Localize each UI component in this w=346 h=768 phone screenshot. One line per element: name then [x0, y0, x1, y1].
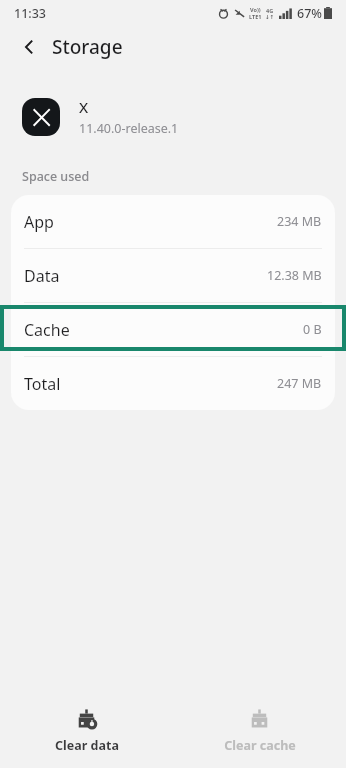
staticText: LTE1 [249, 13, 262, 20]
staticText: 11:33 [14, 5, 47, 22]
staticText: Cache [24, 319, 70, 341]
staticText: 247 MB [277, 375, 322, 392]
staticText: App [24, 211, 54, 233]
staticText: ↓↑ [265, 14, 275, 20]
button[interactable]: Total [11, 357, 335, 410]
staticText: Clear data [55, 737, 119, 754]
staticText: Storage [52, 34, 123, 60]
staticText: 11.40.0-release.1 [79, 120, 179, 137]
staticText: 4G [266, 7, 274, 14]
button[interactable]: Data [11, 249, 335, 302]
staticText: Space used [22, 168, 90, 185]
staticText: X [79, 97, 89, 117]
button[interactable]: Back [14, 32, 44, 62]
staticText: Data [24, 265, 60, 287]
staticText: 12.38 MB [267, 267, 322, 284]
staticText: 234 MB [277, 213, 322, 230]
button: Clear cache [173, 703, 346, 760]
staticText: Clear cache [224, 737, 296, 754]
staticText: 0 B [303, 321, 322, 338]
staticText: Total [24, 373, 61, 395]
staticText: 67% [297, 5, 322, 22]
button[interactable]: Clear data [0, 703, 173, 760]
staticText: Vo)) [250, 6, 261, 13]
button[interactable]: Cache [11, 303, 335, 356]
button[interactable]: App [11, 195, 335, 248]
